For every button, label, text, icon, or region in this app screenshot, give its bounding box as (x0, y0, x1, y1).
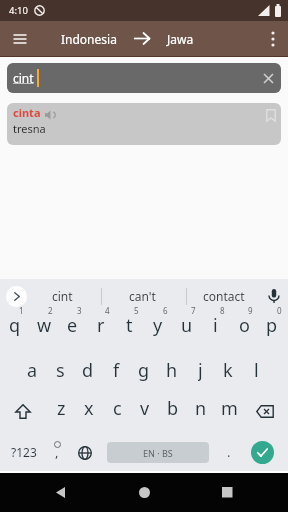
button[interactable] (7, 103, 281, 145)
button[interactable]: o (230, 313, 258, 337)
staticText: w (37, 313, 52, 337)
button[interactable] (6, 286, 27, 307)
button[interactable]: Indonesia (48, 28, 130, 50)
button[interactable]: can't (110, 285, 174, 307)
button[interactable]: d (74, 358, 102, 382)
staticText: 3 (77, 305, 82, 316)
button[interactable]: x (75, 396, 103, 420)
button[interactable]: , (50, 442, 64, 462)
staticText: r (97, 313, 105, 337)
button[interactable] (262, 285, 286, 307)
button[interactable]: l (242, 358, 270, 382)
staticText: 6 (163, 305, 168, 316)
button[interactable]: s (46, 358, 74, 382)
staticText: Jawa (167, 31, 194, 47)
button[interactable] (8, 398, 38, 424)
staticText: p (266, 313, 278, 337)
button[interactable]: r (87, 313, 115, 337)
staticText: 1 (19, 305, 24, 316)
button[interactable] (7, 63, 281, 93)
staticText: a (27, 358, 38, 382)
staticText: tresna (13, 121, 46, 136)
button[interactable]: c (103, 396, 131, 420)
staticText: 8 (220, 305, 225, 316)
button[interactable] (249, 398, 281, 424)
staticText: . (227, 443, 231, 461)
staticText: b (167, 396, 179, 420)
staticText: l (254, 358, 259, 382)
staticText: s (56, 358, 65, 382)
button[interactable] (72, 440, 98, 465)
button[interactable]: b (159, 396, 187, 420)
button[interactable]: . (222, 442, 236, 462)
staticText: Indonesia (61, 31, 117, 47)
staticText: d (82, 358, 94, 382)
staticText: v (140, 396, 150, 420)
button[interactable]: e (58, 313, 86, 337)
button[interactable]: k (214, 358, 242, 382)
button[interactable]: w (30, 313, 58, 337)
button[interactable] (213, 478, 241, 506)
button[interactable]: i (201, 313, 229, 337)
staticText: g (138, 358, 150, 382)
staticText: z (57, 396, 66, 420)
button[interactable] (46, 478, 74, 506)
button[interactable]: Jawa (157, 28, 203, 50)
staticText: q (9, 313, 21, 337)
staticText: contact (203, 288, 245, 304)
staticText: x (84, 396, 94, 420)
staticText: c (113, 396, 122, 420)
staticText: f (113, 358, 120, 382)
button[interactable]: y (144, 313, 172, 337)
staticText: y (153, 313, 163, 337)
button[interactable]: contact (192, 285, 256, 307)
button[interactable]: z (47, 396, 75, 420)
button[interactable] (260, 25, 286, 53)
button[interactable]: g (130, 358, 158, 382)
button[interactable]: p (258, 313, 286, 337)
staticText: can't (129, 288, 156, 304)
staticText: 4 (105, 305, 110, 316)
button[interactable]: f (102, 358, 130, 382)
button[interactable] (251, 441, 274, 464)
staticText: m (221, 396, 238, 420)
staticText: k (223, 358, 233, 382)
button[interactable]: ?123 (6, 440, 41, 464)
staticText: j (198, 358, 203, 382)
button[interactable] (130, 478, 158, 506)
staticText: , (55, 443, 59, 461)
button[interactable]: cint (34, 285, 90, 307)
staticText: EN · BS (143, 447, 173, 459)
staticText: cint (13, 70, 34, 86)
staticText: e (67, 313, 78, 337)
button[interactable]: u (173, 313, 201, 337)
staticText: t (126, 313, 133, 337)
button[interactable]: a (18, 358, 46, 382)
staticText: u (181, 313, 193, 337)
staticText: 2 (48, 305, 53, 316)
staticText: 9 (248, 305, 253, 316)
staticText: 7 (191, 305, 196, 316)
button[interactable] (6, 25, 34, 53)
button[interactable]: j (186, 358, 214, 382)
button[interactable]: m (215, 396, 243, 420)
button[interactable]: t (115, 313, 143, 337)
staticText: ?123 (11, 444, 37, 460)
staticText: i (213, 313, 218, 337)
button[interactable]: h (158, 358, 186, 382)
staticText: 0 (277, 305, 282, 316)
button[interactable]: v (131, 396, 159, 420)
staticText: cint (52, 288, 73, 304)
staticText: h (166, 358, 178, 382)
button[interactable]: q (1, 313, 29, 337)
staticText: 5 (134, 305, 139, 316)
button[interactable] (256, 66, 280, 90)
staticText: 4:10 (9, 4, 28, 17)
button[interactable]: EN · BS (107, 442, 209, 463)
button[interactable]: n (187, 396, 215, 420)
staticText: n (195, 396, 207, 420)
staticText: cinta (13, 105, 41, 120)
staticText: o (239, 313, 250, 337)
